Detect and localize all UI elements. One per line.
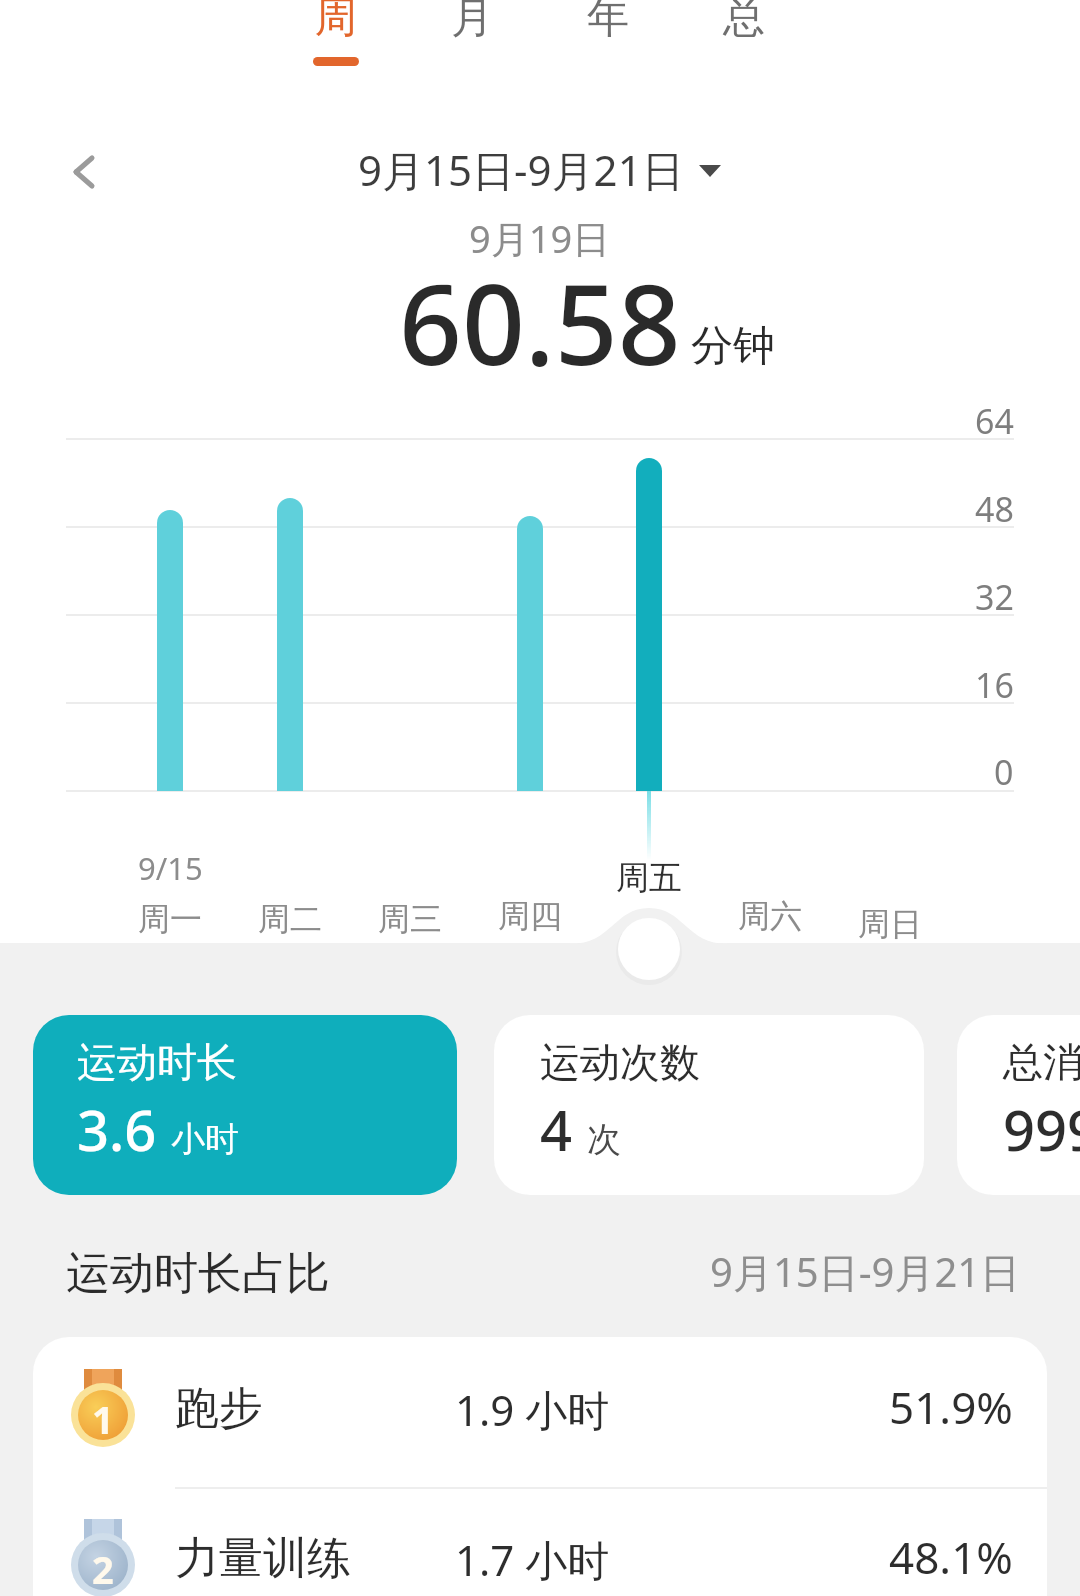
staticText: 次 [587, 1118, 621, 1161]
staticText: 9/15 [138, 847, 203, 889]
staticText: 1.7 小时 [455, 1531, 610, 1588]
staticText: 周五 [616, 857, 682, 899]
staticText: 运动次数 [540, 1037, 700, 1087]
staticText: 51.9% [889, 1377, 1013, 1437]
button[interactable]: 周 [268, 0, 404, 66]
button[interactable]: 1 [33, 1337, 1047, 1487]
staticText: 9月15日-9月21日 [358, 141, 684, 198]
staticText: 周一 [138, 899, 202, 939]
staticText: 32 [975, 574, 1014, 620]
staticText: 1.9 小时 [455, 1381, 610, 1438]
staticText: 48.1% [889, 1527, 1013, 1587]
staticText: 1 [92, 1393, 114, 1445]
staticText: 16 [975, 662, 1014, 708]
button[interactable]: 总 [676, 0, 812, 57]
staticText: 周二 [258, 899, 322, 939]
staticText: 周三 [378, 899, 442, 939]
button[interactable]: 9月15日-9月21日 [358, 141, 722, 198]
staticText: 4 [540, 1091, 573, 1167]
button[interactable]: 运动次数 [494, 1015, 924, 1195]
staticText: 跑步 [175, 1381, 263, 1436]
staticText: 年 [587, 0, 629, 45]
staticText: 64 [975, 398, 1014, 444]
staticText: 月 [451, 0, 493, 45]
button[interactable] [66, 152, 102, 192]
button[interactable]: 月 [404, 0, 540, 57]
staticText: 2 [92, 1543, 114, 1595]
staticText: 3.6 [77, 1091, 157, 1167]
staticText: 分钟 [691, 320, 775, 373]
staticText: 60.58 [399, 247, 681, 397]
staticText: 9999 [1003, 1091, 1080, 1167]
staticText: 周六 [738, 896, 802, 936]
staticText: 周日 [858, 904, 922, 944]
staticText: 0 [994, 749, 1014, 795]
staticText: 周 [315, 0, 357, 45]
staticText: 总 [723, 0, 765, 45]
staticText: 9月19日 [469, 212, 611, 264]
staticText: 9月15日-9月21日 [710, 1244, 1021, 1299]
staticText: 48 [975, 486, 1014, 532]
button[interactable]: 运动时长 [33, 1015, 457, 1195]
staticText: 运动时长 [77, 1037, 237, 1087]
staticText: 小时 [171, 1118, 239, 1161]
staticText: 周四 [498, 896, 562, 936]
button[interactable]: 总消耗 [957, 1015, 1080, 1195]
staticText: 运动时长占比 [66, 1246, 330, 1301]
button[interactable]: 年 [540, 0, 676, 57]
button[interactable]: 2 [33, 1487, 1047, 1596]
staticText: 总消耗 [1003, 1037, 1080, 1087]
staticText: 力量训练 [175, 1531, 351, 1586]
